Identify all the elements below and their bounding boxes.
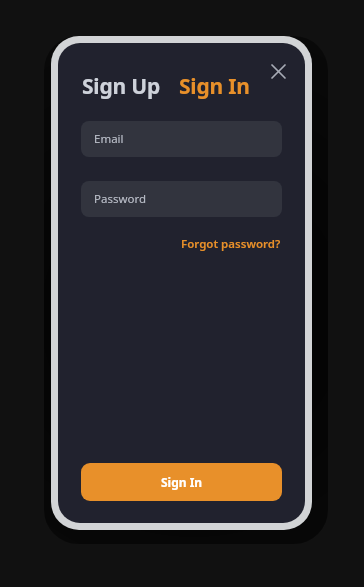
button[interactable]: Sign In bbox=[178, 70, 251, 103]
button[interactable]: Sign Up bbox=[81, 70, 161, 103]
button[interactable]: Sign In bbox=[81, 463, 282, 501]
button[interactable]: Email bbox=[81, 121, 282, 157]
staticText: Sign In bbox=[161, 474, 203, 490]
button[interactable]: Close bbox=[263, 56, 293, 86]
staticText: Email bbox=[94, 131, 124, 147]
staticText: Forgot password? bbox=[181, 236, 281, 252]
staticText: Sign Up bbox=[82, 72, 160, 101]
button[interactable]: Password bbox=[81, 181, 282, 217]
staticText: Sign In bbox=[179, 72, 250, 101]
staticText: Password bbox=[94, 191, 147, 207]
button[interactable]: Forgot password? bbox=[179, 233, 283, 255]
